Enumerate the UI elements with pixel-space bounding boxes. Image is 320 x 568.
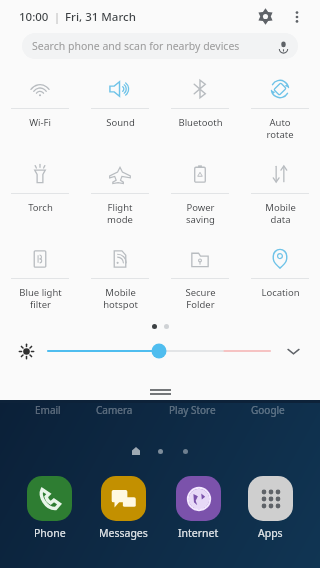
- button[interactable]: Torch: [0, 150, 80, 235]
- staticText: Location: [261, 286, 300, 299]
- staticText: Wi-Fi: [29, 116, 51, 129]
- staticText: Torch: [28, 201, 53, 214]
- button[interactable]: Power saving: [160, 150, 240, 235]
- staticText: Google: [251, 403, 285, 417]
- staticText: 10:00: [19, 9, 49, 25]
- button[interactable]: Expand: [280, 338, 306, 364]
- button[interactable]: Settings: [248, 0, 282, 33]
- button[interactable]: Blue light filter: [0, 235, 80, 320]
- button[interactable]: Location: [240, 235, 320, 320]
- button[interactable]: Phone: [27, 476, 72, 540]
- staticText: Internet: [178, 526, 219, 540]
- staticText: Mobile hotspot: [103, 286, 138, 311]
- button[interactable]: Search phone and scan for nearby devices: [22, 33, 298, 59]
- staticText: Camera: [96, 403, 133, 417]
- staticText: Power saving: [186, 201, 215, 226]
- staticText: Flight mode: [107, 201, 133, 226]
- staticText: Email: [35, 403, 61, 417]
- button[interactable]: Brightness: [14, 339, 38, 363]
- button[interactable]: Bluetooth: [160, 65, 240, 150]
- staticText: Mobile data: [265, 201, 296, 226]
- button[interactable]: Mobile data: [240, 150, 320, 235]
- button[interactable]: Apps: [248, 476, 293, 540]
- staticText: Sound: [106, 116, 135, 129]
- button[interactable]: Flight mode: [80, 150, 160, 235]
- button[interactable]: Sound: [80, 65, 160, 150]
- button[interactable]: Mobile hotspot: [80, 235, 160, 320]
- staticText: Bluetooth: [178, 116, 223, 129]
- staticText: Secure Folder: [185, 286, 216, 311]
- staticText: Play Store: [169, 403, 216, 417]
- staticText: Fri, 31 March: [65, 9, 136, 25]
- button[interactable]: Brightness slider: [48, 340, 270, 362]
- button[interactable]: Auto rotate: [240, 65, 320, 150]
- staticText: Phone: [34, 526, 66, 540]
- staticText: Search phone and scan for nearby devices: [32, 39, 240, 53]
- staticText: Blue light filter: [19, 286, 62, 311]
- staticText: Apps: [258, 526, 283, 540]
- button[interactable]: Wi-Fi: [0, 65, 80, 150]
- button[interactable]: More options: [282, 2, 312, 32]
- staticText: Auto rotate: [266, 116, 294, 141]
- button[interactable]: Secure Folder: [160, 235, 240, 320]
- button[interactable]: Internet: [176, 476, 221, 540]
- button[interactable]: Messages: [99, 476, 148, 540]
- staticText: |: [49, 10, 65, 24]
- staticText: Messages: [99, 526, 148, 540]
